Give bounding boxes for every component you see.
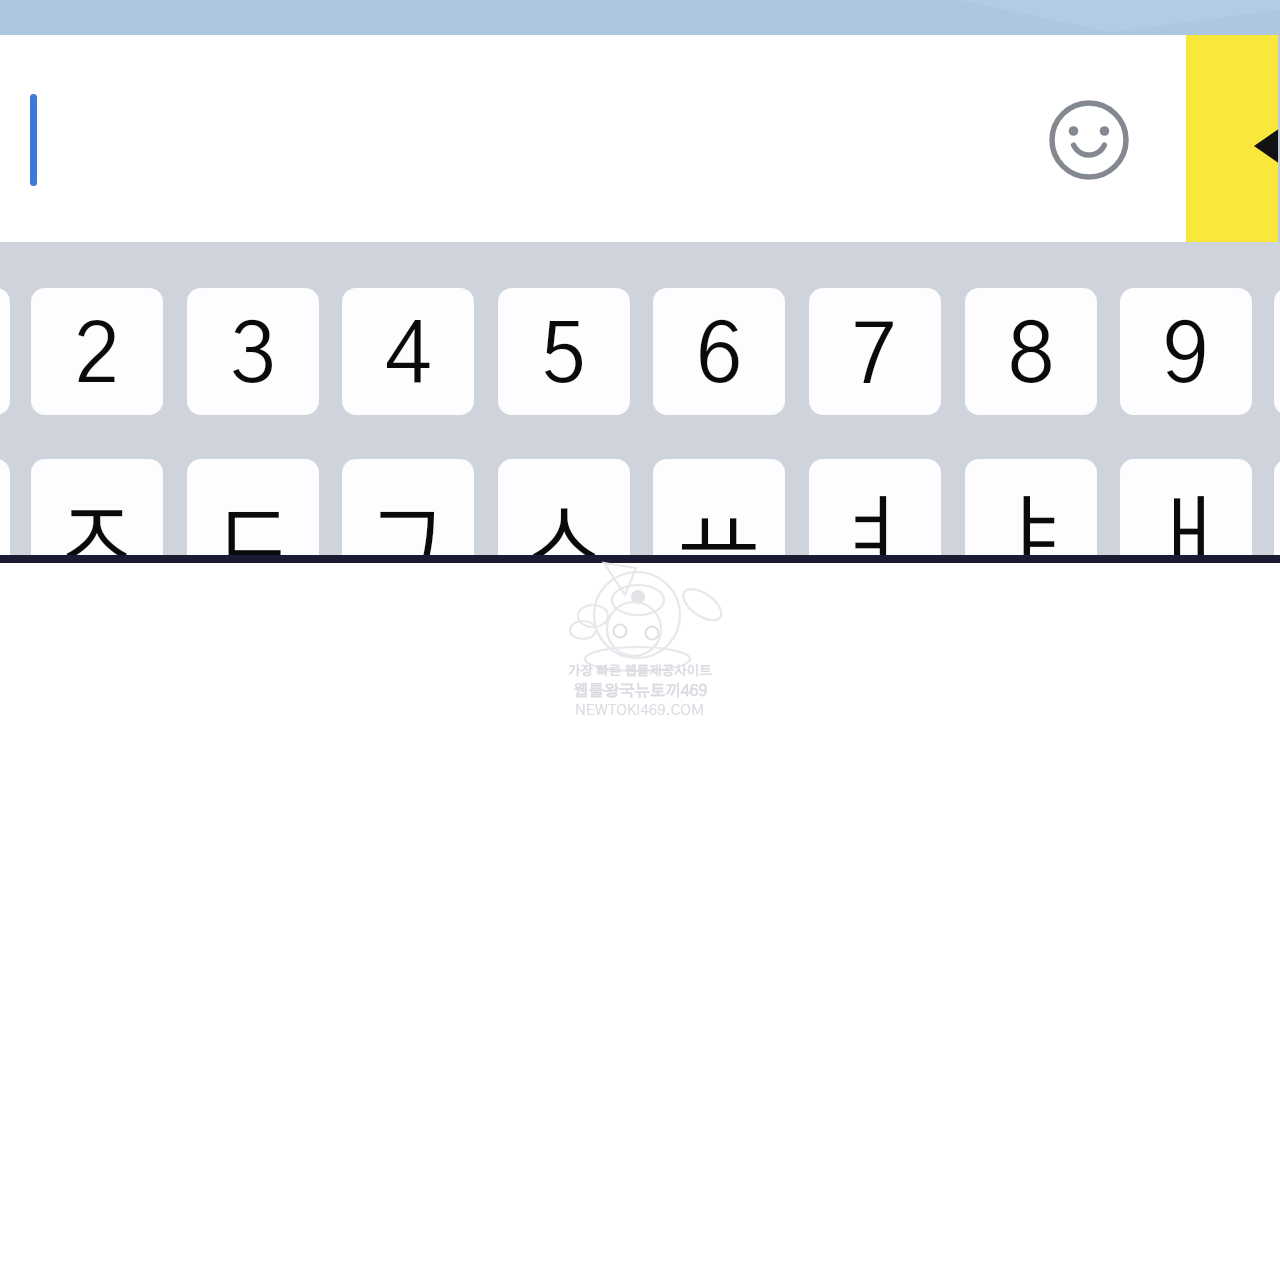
staticText: ㅅ bbox=[521, 496, 607, 555]
staticText: 3 bbox=[230, 316, 277, 399]
button[interactable] bbox=[0, 459, 10, 555]
staticText: 웹툴왕국뉴토끼469 bbox=[573, 683, 708, 699]
staticText: 가장 빠른 웹툴제공사이트 bbox=[568, 665, 712, 678]
staticText: 5 bbox=[541, 316, 588, 399]
staticText: 7 bbox=[852, 316, 899, 399]
button[interactable]: ㅕ bbox=[809, 459, 941, 555]
button[interactable] bbox=[1274, 288, 1280, 415]
staticText: ㅕ bbox=[832, 496, 918, 555]
button[interactable]: 6 bbox=[653, 288, 785, 415]
button[interactable] bbox=[1186, 35, 1278, 242]
button[interactable]: ㄱ bbox=[342, 459, 474, 555]
staticText: 9 bbox=[1163, 316, 1210, 399]
button[interactable]: 2 bbox=[31, 288, 163, 415]
button[interactable]: ㅅ bbox=[498, 459, 630, 555]
staticText: ㄷ bbox=[210, 496, 296, 555]
button[interactable]: 9 bbox=[1120, 288, 1252, 415]
button[interactable]: 4 bbox=[342, 288, 474, 415]
staticText: ㄱ bbox=[365, 496, 451, 555]
staticText: 4 bbox=[385, 316, 432, 399]
button[interactable]: ㄷ bbox=[187, 459, 319, 555]
staticText: 2 bbox=[74, 316, 121, 399]
staticText: ㅛ bbox=[676, 496, 762, 555]
button[interactable] bbox=[1274, 459, 1280, 555]
staticText: ㅑ bbox=[988, 496, 1074, 555]
staticText: ㅈ bbox=[54, 496, 140, 555]
button[interactable]: ㅑ bbox=[965, 459, 1097, 555]
staticText: NEWTOKI469.COM bbox=[575, 703, 705, 718]
button[interactable] bbox=[0, 288, 10, 415]
button[interactable]: 7 bbox=[809, 288, 941, 415]
button[interactable] bbox=[0, 35, 1040, 242]
button[interactable]: ㅐ bbox=[1120, 459, 1252, 555]
staticText: 6 bbox=[696, 316, 743, 399]
button[interactable] bbox=[1044, 95, 1134, 185]
staticText: ㅐ bbox=[1143, 496, 1229, 555]
button[interactable]: ㅈ bbox=[31, 459, 163, 555]
button[interactable]: 5 bbox=[498, 288, 630, 415]
staticText: 8 bbox=[1008, 316, 1055, 399]
button[interactable]: ㅛ bbox=[653, 459, 785, 555]
button[interactable]: 3 bbox=[187, 288, 319, 415]
button[interactable]: 8 bbox=[965, 288, 1097, 415]
